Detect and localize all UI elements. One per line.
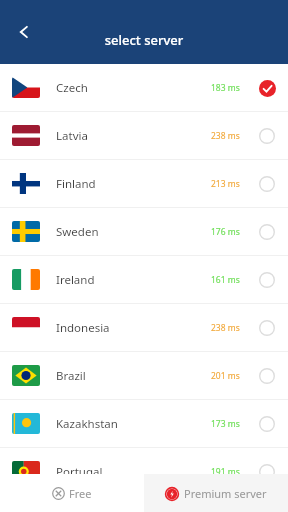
button[interactable]: Finland	[0, 160, 288, 208]
staticText: Premium server	[184, 486, 267, 501]
button[interactable]: Premium server	[144, 474, 288, 512]
button[interactable]: Portugal	[0, 448, 288, 496]
staticText: 176 ms	[211, 226, 240, 238]
staticText: Finland	[56, 176, 96, 192]
staticText: 201 ms	[211, 370, 240, 382]
staticText: 183 ms	[211, 82, 240, 94]
staticText: Free	[69, 486, 92, 501]
button[interactable]: Back	[4, 12, 44, 52]
staticText: Indonesia	[56, 320, 110, 336]
staticText: select server	[0, 31, 288, 49]
staticText: Czech	[56, 80, 88, 96]
staticText: 238 ms	[211, 322, 240, 334]
staticText: Kazakhstan	[56, 416, 118, 432]
button[interactable]: Free	[0, 474, 144, 512]
staticText: 213 ms	[211, 178, 240, 190]
staticText: Latvia	[56, 128, 88, 144]
button[interactable]: Indonesia	[0, 304, 288, 352]
staticText: 238 ms	[211, 130, 240, 142]
button[interactable]: Sweden	[0, 208, 288, 256]
button[interactable]: Kazakhstan	[0, 400, 288, 448]
button[interactable]: Czech	[0, 64, 288, 112]
staticText: Brazil	[56, 368, 86, 384]
staticText: Ireland	[56, 272, 95, 288]
button[interactable]: Ireland	[0, 256, 288, 304]
button[interactable]: Brazil	[0, 352, 288, 400]
button[interactable]: Latvia	[0, 112, 288, 160]
staticText: 173 ms	[211, 418, 240, 430]
staticText: 191 ms	[211, 466, 240, 478]
staticText: Portugal	[56, 464, 103, 480]
staticText: 161 ms	[211, 274, 240, 286]
staticText: Sweden	[56, 224, 99, 240]
